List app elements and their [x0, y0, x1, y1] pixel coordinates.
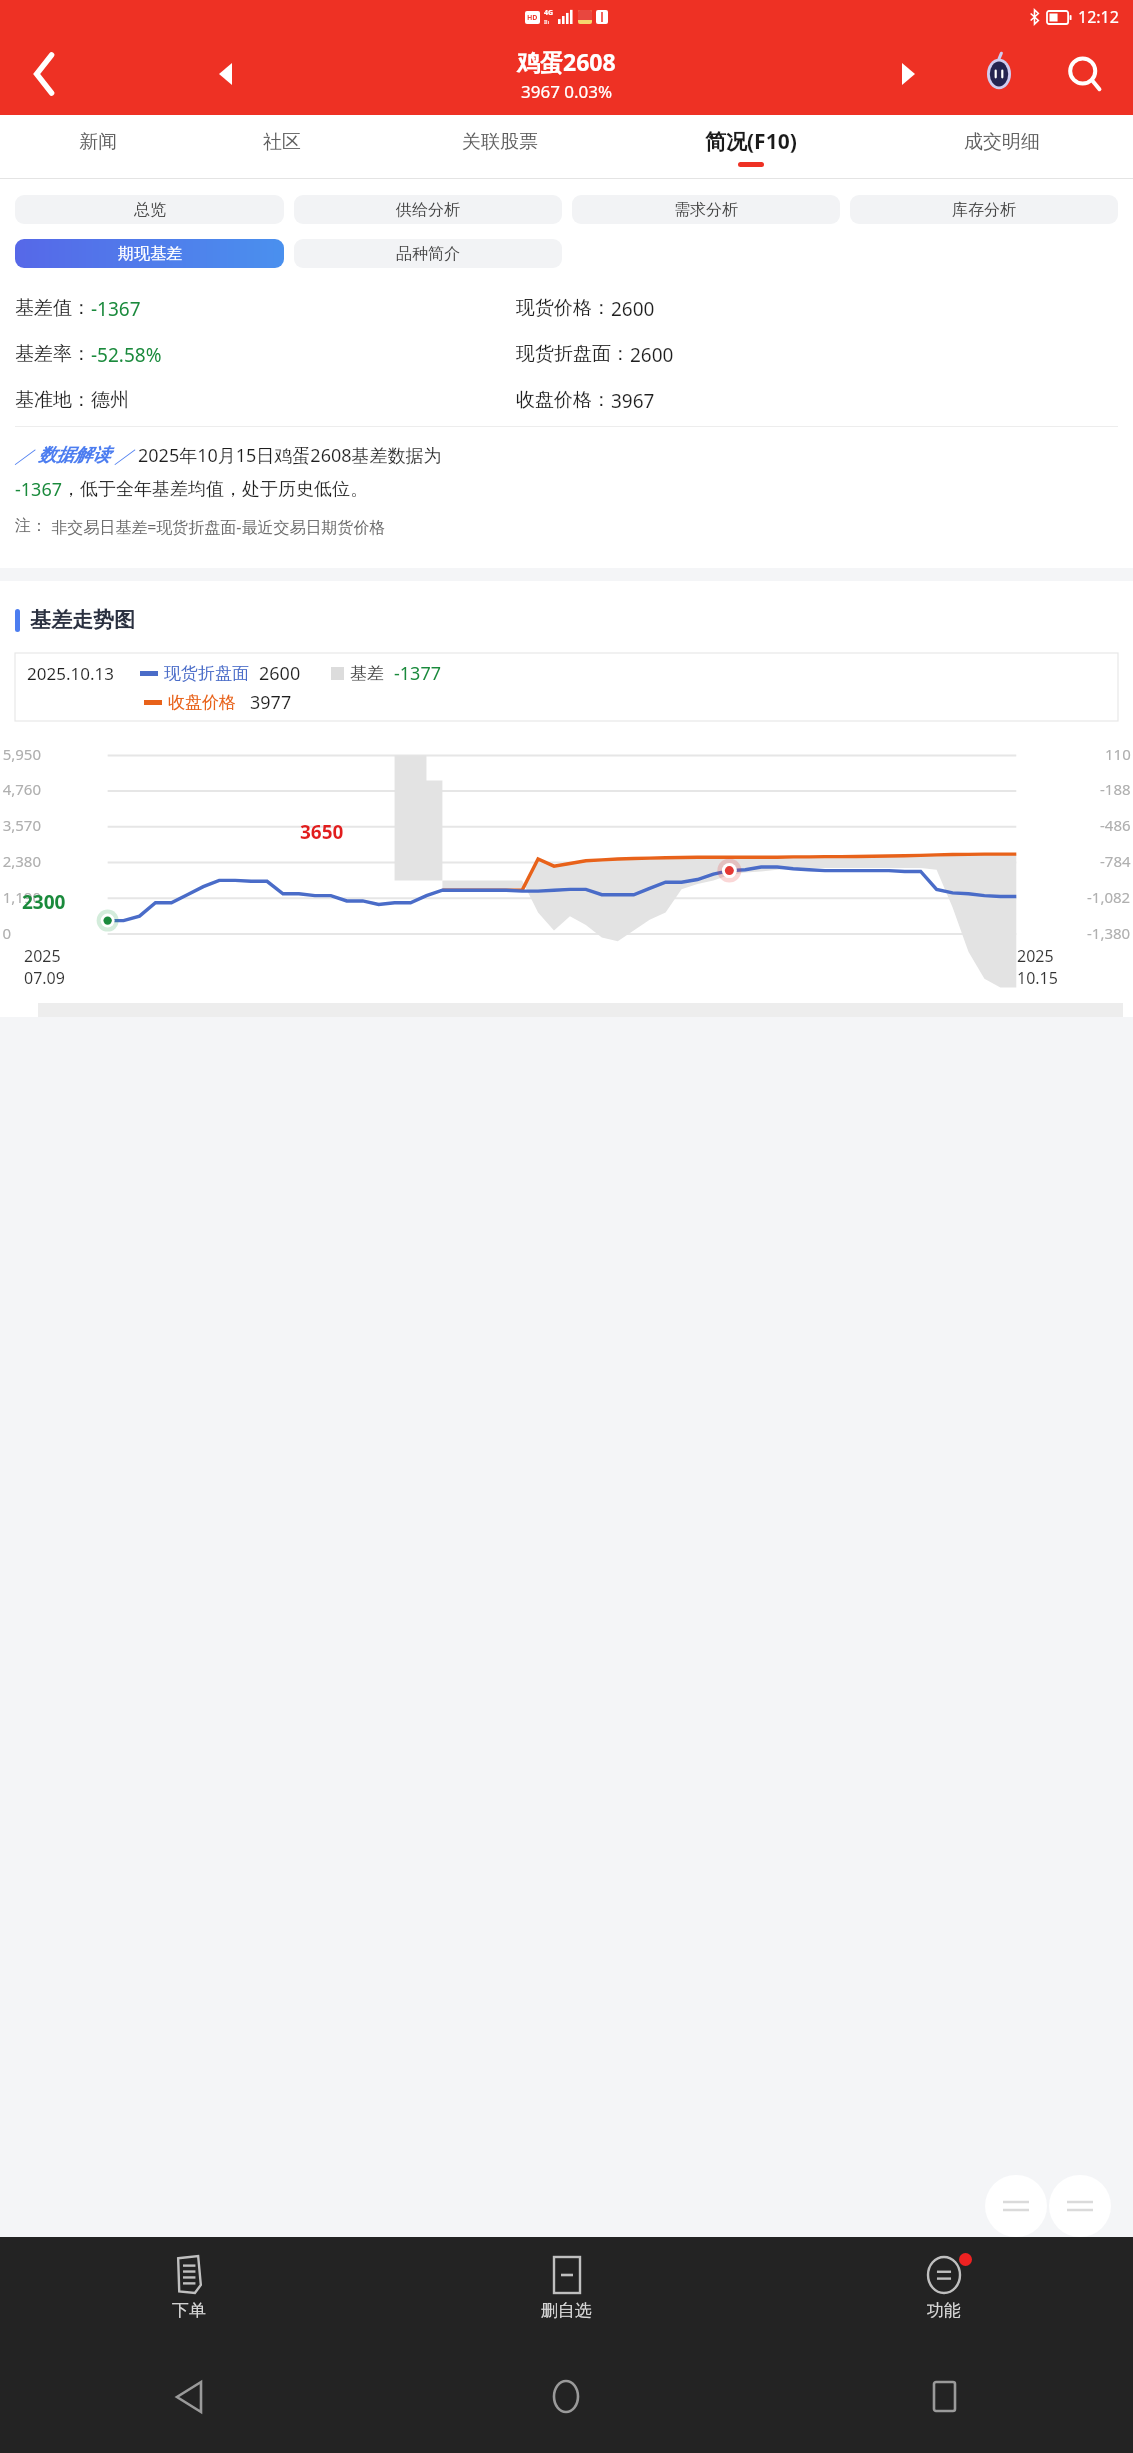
staticText: 3,570	[2, 815, 41, 835]
staticText: 收盘价格	[168, 692, 236, 713]
button[interactable]: 返回	[0, 2340, 377, 2453]
button[interactable]: 搜索	[1037, 33, 1133, 115]
staticText: 基差走势图	[30, 607, 135, 633]
button[interactable]: 总览	[15, 195, 284, 224]
staticText: 2025	[1017, 945, 1054, 967]
staticText: 2300	[22, 889, 66, 915]
staticText: 数据解读	[38, 444, 110, 467]
button[interactable]: 主页	[377, 2340, 755, 2453]
button[interactable]: 供给分析	[294, 195, 562, 224]
staticText: 2025.10.13	[27, 662, 114, 685]
staticText: 3650	[300, 819, 344, 845]
staticText: 07.09	[24, 967, 65, 989]
button[interactable]: 新闻	[6, 115, 190, 179]
staticText: -1,380	[1087, 923, 1131, 943]
staticText: 基准地：	[15, 388, 91, 412]
staticText: 功能	[927, 2300, 961, 2321]
button[interactable]: 智能助手	[972, 47, 1026, 101]
staticText: ／	[110, 443, 138, 468]
staticText: 5,950	[2, 744, 41, 764]
button[interactable]: 下单	[0, 2237, 377, 2340]
staticText: 收盘价格：	[516, 388, 611, 412]
staticText: 0	[2, 923, 11, 943]
button[interactable]: 库存分析	[850, 195, 1118, 224]
staticText: 删自选	[541, 2300, 592, 2321]
staticText: -1367	[91, 296, 141, 322]
staticText: HD	[527, 13, 538, 23]
staticText: 3967	[611, 388, 655, 414]
staticText: ，低于全年基差均值，处于历史低位。	[62, 478, 368, 501]
staticText: 基差值：	[15, 296, 91, 320]
staticText: Ilı	[544, 18, 550, 26]
staticText: 需求分析	[674, 200, 738, 220]
button[interactable]: 上一个	[200, 49, 250, 99]
staticText: 现货价格：	[516, 296, 611, 320]
staticText: 供给分析	[396, 200, 460, 220]
button[interactable]: 需求分析	[572, 195, 840, 224]
staticText: 10.15	[1017, 967, 1058, 989]
staticText: 德州	[91, 388, 129, 412]
staticText: 基差	[350, 663, 384, 684]
button[interactable]: 功能	[755, 2237, 1133, 2340]
staticText: 成交明细	[964, 130, 1040, 154]
staticText: 2600	[611, 296, 655, 322]
staticText: -52.58%	[91, 342, 162, 368]
staticText: 1,190	[2, 887, 41, 907]
staticText: ／	[15, 443, 38, 468]
staticText: 4,760	[2, 779, 41, 799]
staticText: -486	[1100, 815, 1131, 835]
button[interactable]: 期现基差	[15, 239, 284, 268]
button[interactable]: 成交明细	[876, 115, 1127, 179]
button[interactable]: 品种简介	[294, 239, 562, 268]
button[interactable]: 删自选	[377, 2237, 755, 2340]
staticText: 库存分析	[952, 200, 1016, 220]
staticText: -1367	[15, 477, 62, 502]
staticText: 简况(F10)	[705, 127, 797, 156]
button[interactable]: 返回	[0, 33, 90, 115]
staticText: 2600	[259, 661, 301, 686]
button[interactable]: 悬浮按钮	[1049, 2175, 1111, 2237]
staticText: 2025	[24, 945, 61, 967]
staticText: 基差率：	[15, 342, 91, 366]
staticText: 2025年10月15日鸡蛋2608基差数据为	[138, 443, 442, 468]
button[interactable]: 简况(F10)	[625, 115, 876, 179]
staticText: 4G	[544, 8, 554, 18]
staticText: -1,082	[1087, 887, 1131, 907]
staticText: 总览	[134, 200, 166, 220]
staticText: 2,380	[2, 851, 41, 871]
button[interactable]: 关联股票	[374, 115, 625, 179]
staticText: 现货折盘面：	[516, 342, 630, 366]
staticText: 关联股票	[462, 130, 538, 154]
staticText: 期现基差	[118, 244, 182, 264]
staticText: 品种简介	[396, 244, 460, 264]
staticText: 3967 0.03%	[521, 80, 613, 103]
staticText: 12:12	[1078, 6, 1119, 28]
button[interactable]: 悬浮按钮	[985, 2175, 1047, 2237]
staticText: 下单	[172, 2300, 206, 2321]
staticText: 注：	[15, 516, 47, 536]
staticText: 鸡蛋2608	[517, 46, 616, 77]
button[interactable]: 社区	[190, 115, 374, 179]
button[interactable]: 下一个	[883, 49, 933, 99]
staticText: 现货折盘面	[164, 663, 249, 684]
staticText: -1377	[394, 661, 441, 686]
staticText: 2600	[630, 342, 674, 368]
staticText: -784	[1100, 851, 1131, 871]
button[interactable]: 最近任务	[755, 2340, 1133, 2453]
staticText: 3977	[250, 690, 292, 715]
staticText: 新闻	[79, 130, 117, 154]
staticText: 110	[1105, 744, 1131, 764]
staticText: -188	[1100, 779, 1131, 799]
staticText: 非交易日基差=现货折盘面-最近交易日期货价格	[47, 516, 386, 538]
staticText: 社区	[263, 130, 301, 154]
